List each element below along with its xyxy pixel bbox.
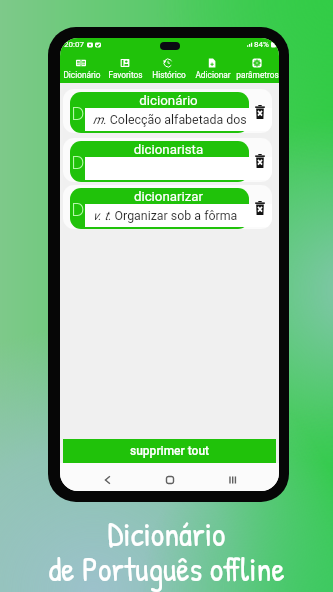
staticText: dicionarista: [79, 142, 249, 158]
staticText: Favoritos: [108, 70, 143, 80]
button[interactable]: Delete: [255, 105, 265, 119]
button[interactable]: dicionário: [63, 89, 272, 133]
staticText: dicionário: [79, 93, 249, 109]
button[interactable]: Histórico: [147, 51, 191, 83]
staticText: de Português offline: [0, 547, 333, 592]
staticText: dicionarizar: [79, 189, 249, 205]
staticText: 84%: [254, 40, 269, 49]
button[interactable]: parâmetros: [235, 51, 279, 83]
staticText: supprimer tout: [130, 444, 210, 458]
staticText: Adicionar: [195, 70, 231, 80]
button[interactable]: Dicionário: [60, 51, 103, 83]
button[interactable]: Delete: [255, 154, 265, 168]
staticText: m. Colecção alfabetada dos: [93, 112, 247, 127]
staticText: Dicionário: [0, 512, 333, 557]
staticText: parâmetros: [236, 70, 279, 80]
button[interactable]: dicionarista: [63, 138, 272, 182]
button[interactable]: Recents: [224, 472, 240, 488]
button[interactable]: Adicionar: [191, 51, 235, 83]
staticText: v. t. Organizar sob a fôrma: [93, 208, 238, 223]
button[interactable]: supprimer tout: [63, 439, 276, 463]
staticText: Dicionário: [63, 70, 101, 80]
button[interactable]: Delete: [255, 201, 265, 215]
staticText: 20:07: [64, 40, 84, 49]
staticText: Histórico: [152, 70, 186, 80]
button[interactable]: dicionarizar: [63, 185, 272, 229]
button[interactable]: Back: [100, 472, 116, 488]
button[interactable]: Home: [162, 472, 178, 488]
button[interactable]: Favoritos: [103, 51, 147, 83]
